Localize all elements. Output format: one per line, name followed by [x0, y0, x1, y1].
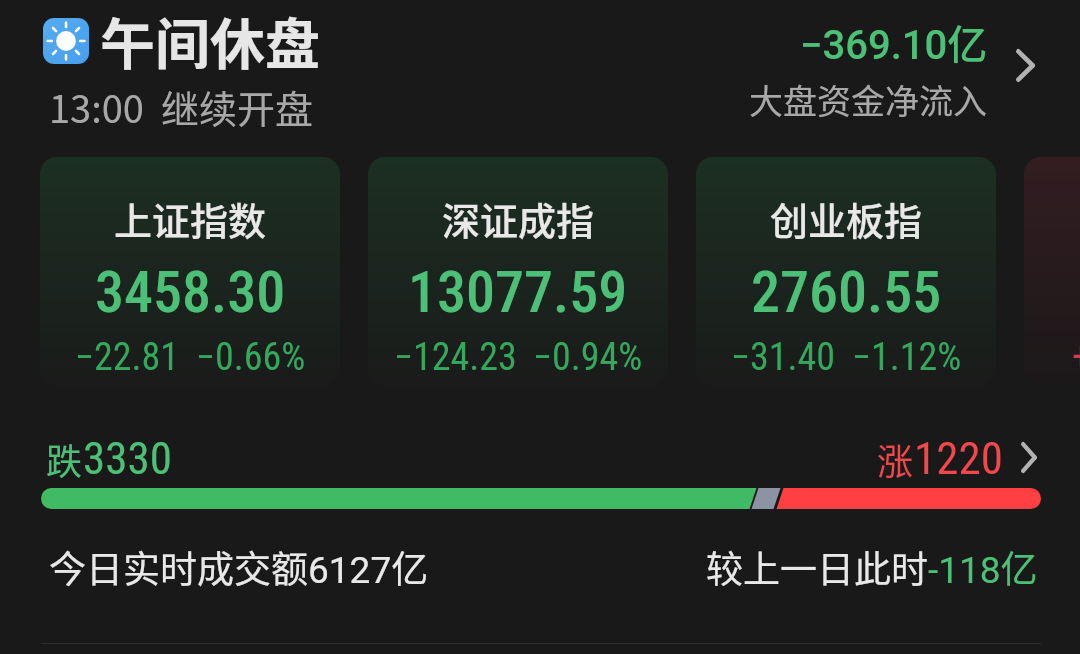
button[interactable]: 上证指数: [40, 157, 340, 385]
staticText: 深证成指: [442, 191, 595, 246]
button[interactable]: 午间休盘: [36, 8, 336, 133]
staticText: 涨: [877, 433, 914, 485]
staticText: 跌: [46, 433, 83, 485]
staticText: −0.66%: [196, 335, 306, 380]
staticText: 创业板指: [770, 191, 923, 246]
staticText: 午间休盘: [100, 0, 321, 80]
staticText: 13077.59: [408, 258, 628, 326]
staticText: +19.5: [1072, 335, 1080, 380]
staticText: −22.81: [75, 335, 180, 380]
staticText: −124.23: [394, 335, 517, 380]
button[interactable]: 科创50: [1024, 157, 1080, 385]
staticText: 1220: [914, 432, 1003, 485]
staticText: 大盘资金净流入: [749, 75, 987, 124]
button[interactable]: 深证成指: [368, 157, 668, 385]
button[interactable]: 创业板指: [696, 157, 996, 385]
staticText: 较上一日此时: [706, 540, 928, 594]
staticText: −0.94%: [533, 335, 643, 380]
other: 查看大盘资金净流入: [1016, 49, 1035, 82]
other: 涨跌家数详情: [1021, 442, 1037, 473]
staticText: 今日实时成交额6127亿: [49, 540, 429, 594]
button[interactable]: −369.10亿: [700, 10, 1040, 130]
staticText: 13:00 继续开盘: [49, 79, 313, 134]
staticText: 3330: [83, 432, 172, 485]
staticText: -118亿: [928, 540, 1038, 594]
button[interactable]: 跌: [46, 432, 1037, 485]
staticText: −1.12%: [852, 335, 962, 380]
staticText: 3458.30: [95, 258, 286, 326]
staticText: 上证指数: [114, 191, 267, 246]
staticText: −369.10亿: [800, 13, 988, 71]
button[interactable]: [41, 488, 1041, 509]
staticText: −31.40: [731, 335, 836, 380]
staticText: 2760.55: [751, 258, 942, 326]
